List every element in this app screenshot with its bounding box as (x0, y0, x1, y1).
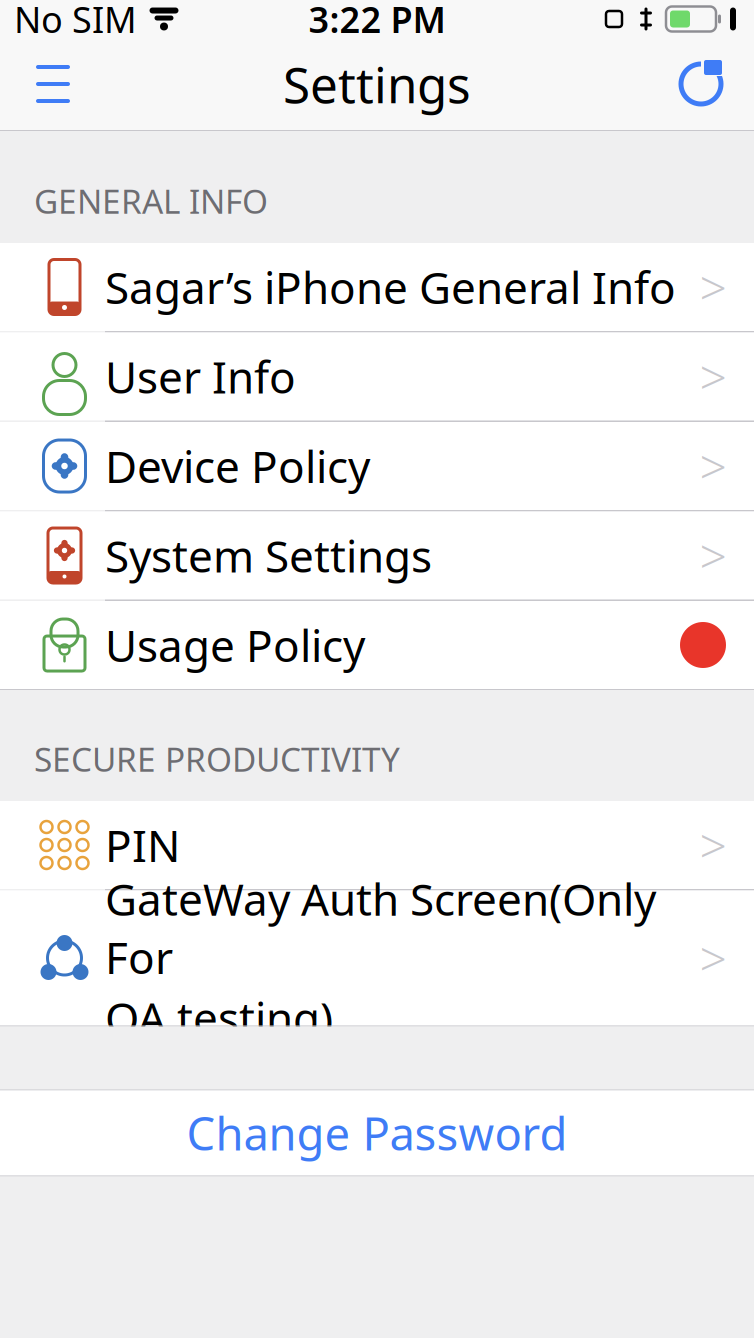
staticText: > (699, 434, 726, 498)
staticText: Usage Policy (105, 616, 365, 674)
staticText: GENERAL INFO (34, 179, 268, 223)
staticText: 3:22 PM (308, 0, 445, 43)
button[interactable]: PIN (0, 801, 754, 889)
staticText: PIN (105, 816, 180, 874)
staticText: Device Policy (105, 437, 370, 495)
staticText: No SIM (14, 0, 137, 43)
staticText: > (699, 255, 726, 319)
button[interactable]: Menu (24, 55, 82, 113)
button[interactable]: System Settings (0, 511, 754, 599)
button[interactable]: Refresh (672, 55, 730, 113)
staticText: > (699, 345, 726, 408)
button[interactable]: Device Policy (0, 422, 754, 510)
staticText: GateWay Auth Screen(Only For (105, 869, 656, 986)
button[interactable]: Sagar’s iPhone General Info (0, 243, 754, 331)
button[interactable]: Usage Policy (0, 601, 754, 689)
staticText: Change Password (186, 1103, 567, 1163)
button[interactable]: GateWay Auth Screen(Only For (0, 890, 754, 1025)
button[interactable]: User Info (0, 332, 754, 420)
staticText: > (699, 524, 726, 587)
staticText: SECURE PRODUCTIVITY (34, 737, 400, 781)
staticText: Settings (283, 51, 471, 117)
staticText: QA testing) (105, 988, 333, 1047)
staticText: > (699, 813, 726, 877)
staticText: Sagar’s iPhone General Info (105, 258, 676, 316)
staticText: User Info (105, 347, 296, 406)
staticText: > (699, 926, 726, 990)
button[interactable]: Change Password (0, 1090, 754, 1175)
staticText: System Settings (105, 526, 432, 585)
